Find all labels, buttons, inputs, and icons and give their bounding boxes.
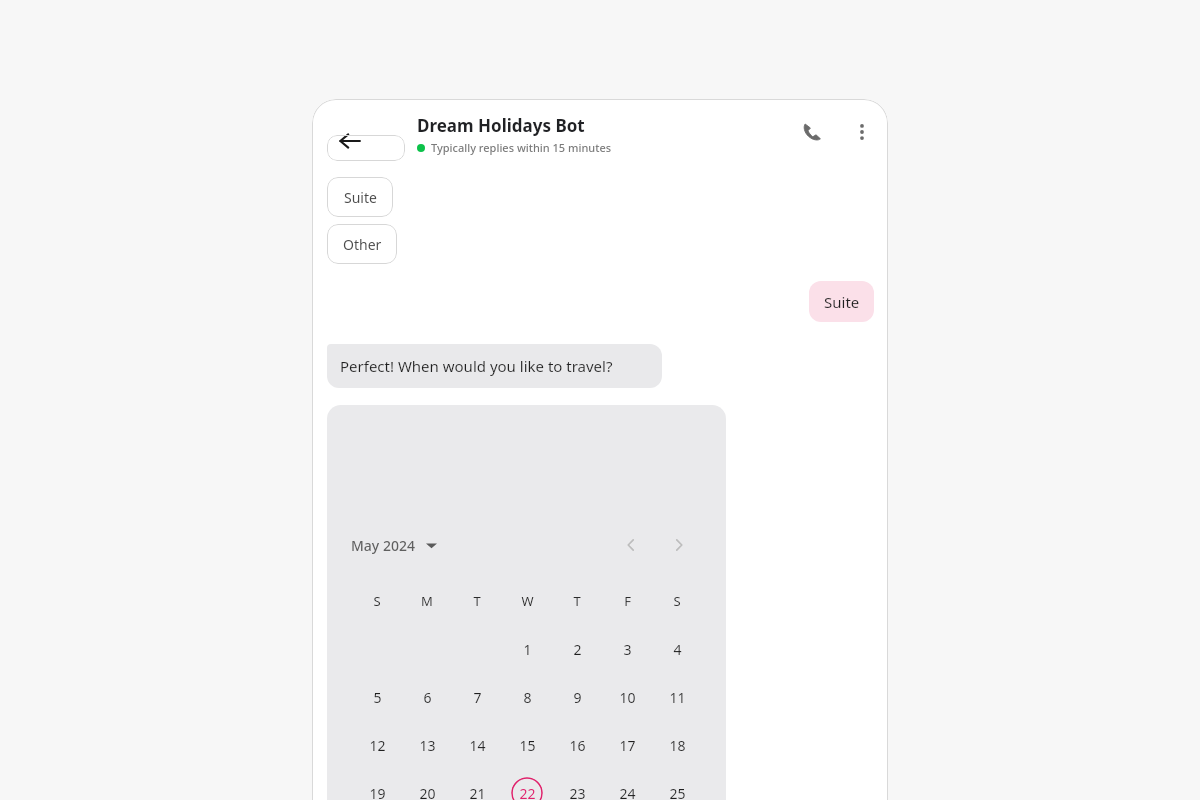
staticText: 16 — [569, 736, 586, 755]
button[interactable] — [327, 135, 405, 161]
staticText: 14 — [469, 736, 486, 755]
staticText: 1 — [523, 640, 532, 659]
staticText: 2 — [573, 640, 582, 659]
button[interactable]: 2 — [561, 633, 593, 665]
button[interactable]: 18 — [661, 729, 693, 761]
button[interactable]: 1 — [511, 633, 543, 665]
button[interactable]: 8 — [511, 681, 543, 713]
button[interactable]: Suite — [809, 281, 874, 322]
staticText: 12 — [369, 736, 386, 755]
button[interactable]: 6 — [411, 681, 443, 713]
staticText: 13 — [419, 736, 436, 755]
button[interactable]: 11 — [661, 681, 693, 713]
staticText: 6 — [423, 688, 432, 707]
staticText: 25 — [669, 784, 686, 800]
staticText: Perfect! When would you like to travel? — [340, 356, 613, 376]
staticText: S — [373, 592, 381, 610]
staticText: S — [673, 592, 681, 610]
button[interactable]: 22 — [511, 777, 543, 800]
staticText: 15 — [519, 736, 536, 755]
staticText: 20 — [419, 784, 436, 800]
staticText: 24 — [619, 784, 636, 800]
button[interactable]: Previous month — [615, 529, 647, 561]
staticText: F — [624, 592, 631, 610]
staticText: 10 — [619, 688, 636, 707]
button[interactable]: 15 — [511, 729, 543, 761]
staticText: Suite — [344, 188, 377, 207]
button[interactable]: 16 — [561, 729, 593, 761]
button[interactable]: 24 — [611, 777, 643, 800]
button[interactable]: 23 — [561, 777, 593, 800]
staticText: T — [473, 592, 481, 610]
button[interactable]: 9 — [561, 681, 593, 713]
button[interactable]: 3 — [611, 633, 643, 665]
staticText: 7 — [473, 688, 482, 707]
button[interactable]: 17 — [611, 729, 643, 761]
staticText: 3 — [623, 640, 632, 659]
staticText: 9 — [573, 688, 582, 707]
button[interactable]: Other — [327, 224, 397, 264]
button[interactable]: 7 — [461, 681, 493, 713]
button[interactable]: May 2024 — [351, 529, 437, 561]
button[interactable]: Back — [326, 117, 374, 165]
staticText: May 2024 — [351, 536, 415, 555]
button[interactable]: Suite — [327, 177, 393, 217]
button[interactable]: 19 — [361, 777, 393, 800]
staticText: 23 — [569, 784, 586, 800]
staticText: M — [421, 592, 433, 610]
staticText: Typically replies within 15 minutes — [431, 140, 612, 155]
button[interactable]: 4 — [661, 633, 693, 665]
staticText: 8 — [523, 688, 532, 707]
staticText: 21 — [469, 784, 486, 800]
staticText: 17 — [619, 736, 636, 755]
button[interactable]: 5 — [361, 681, 393, 713]
staticText: 18 — [669, 736, 686, 755]
button[interactable]: 20 — [411, 777, 443, 800]
button[interactable]: More options — [840, 110, 884, 154]
button[interactable]: 10 — [611, 681, 643, 713]
button[interactable]: 13 — [411, 729, 443, 761]
staticText: 19 — [369, 784, 386, 800]
staticText: 11 — [669, 688, 686, 707]
staticText: 22 — [519, 784, 536, 800]
staticText: W — [521, 592, 534, 610]
button[interactable]: Next month — [663, 529, 695, 561]
button[interactable]: 14 — [461, 729, 493, 761]
staticText: Other — [343, 235, 382, 254]
staticText: 5 — [373, 688, 382, 707]
button[interactable]: 12 — [361, 729, 393, 761]
button[interactable]: Perfect! When would you like to travel? — [327, 344, 662, 388]
staticText: T — [573, 592, 581, 610]
staticText: 4 — [673, 640, 682, 659]
button[interactable]: Call — [790, 110, 834, 154]
staticText: Dream Holidays Bot — [417, 114, 585, 137]
staticText: Suite — [824, 292, 860, 312]
button[interactable]: 21 — [461, 777, 493, 800]
button[interactable]: 25 — [661, 777, 693, 800]
